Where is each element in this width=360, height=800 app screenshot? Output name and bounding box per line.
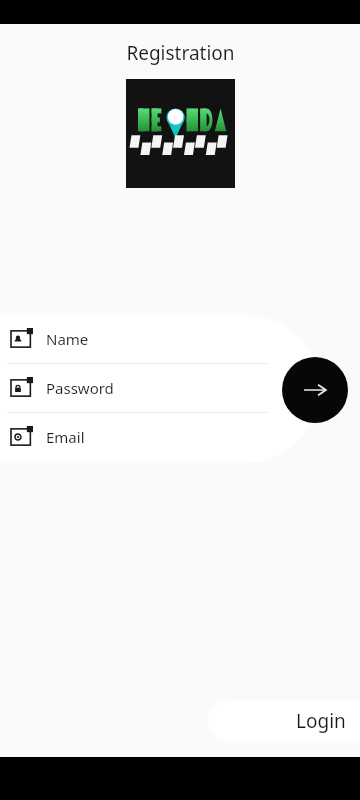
button[interactable]: Login [208,700,360,741]
staticText: Login [296,708,346,734]
button[interactable]: Name [0,315,320,363]
button[interactable]: Email [0,413,320,461]
staticText: Registration [126,40,235,66]
button[interactable]: Password [0,364,320,412]
staticText: Email [46,427,85,447]
staticText: Name [46,329,89,349]
button[interactable]: Submit registration [282,357,348,423]
staticText: Password [46,378,114,398]
